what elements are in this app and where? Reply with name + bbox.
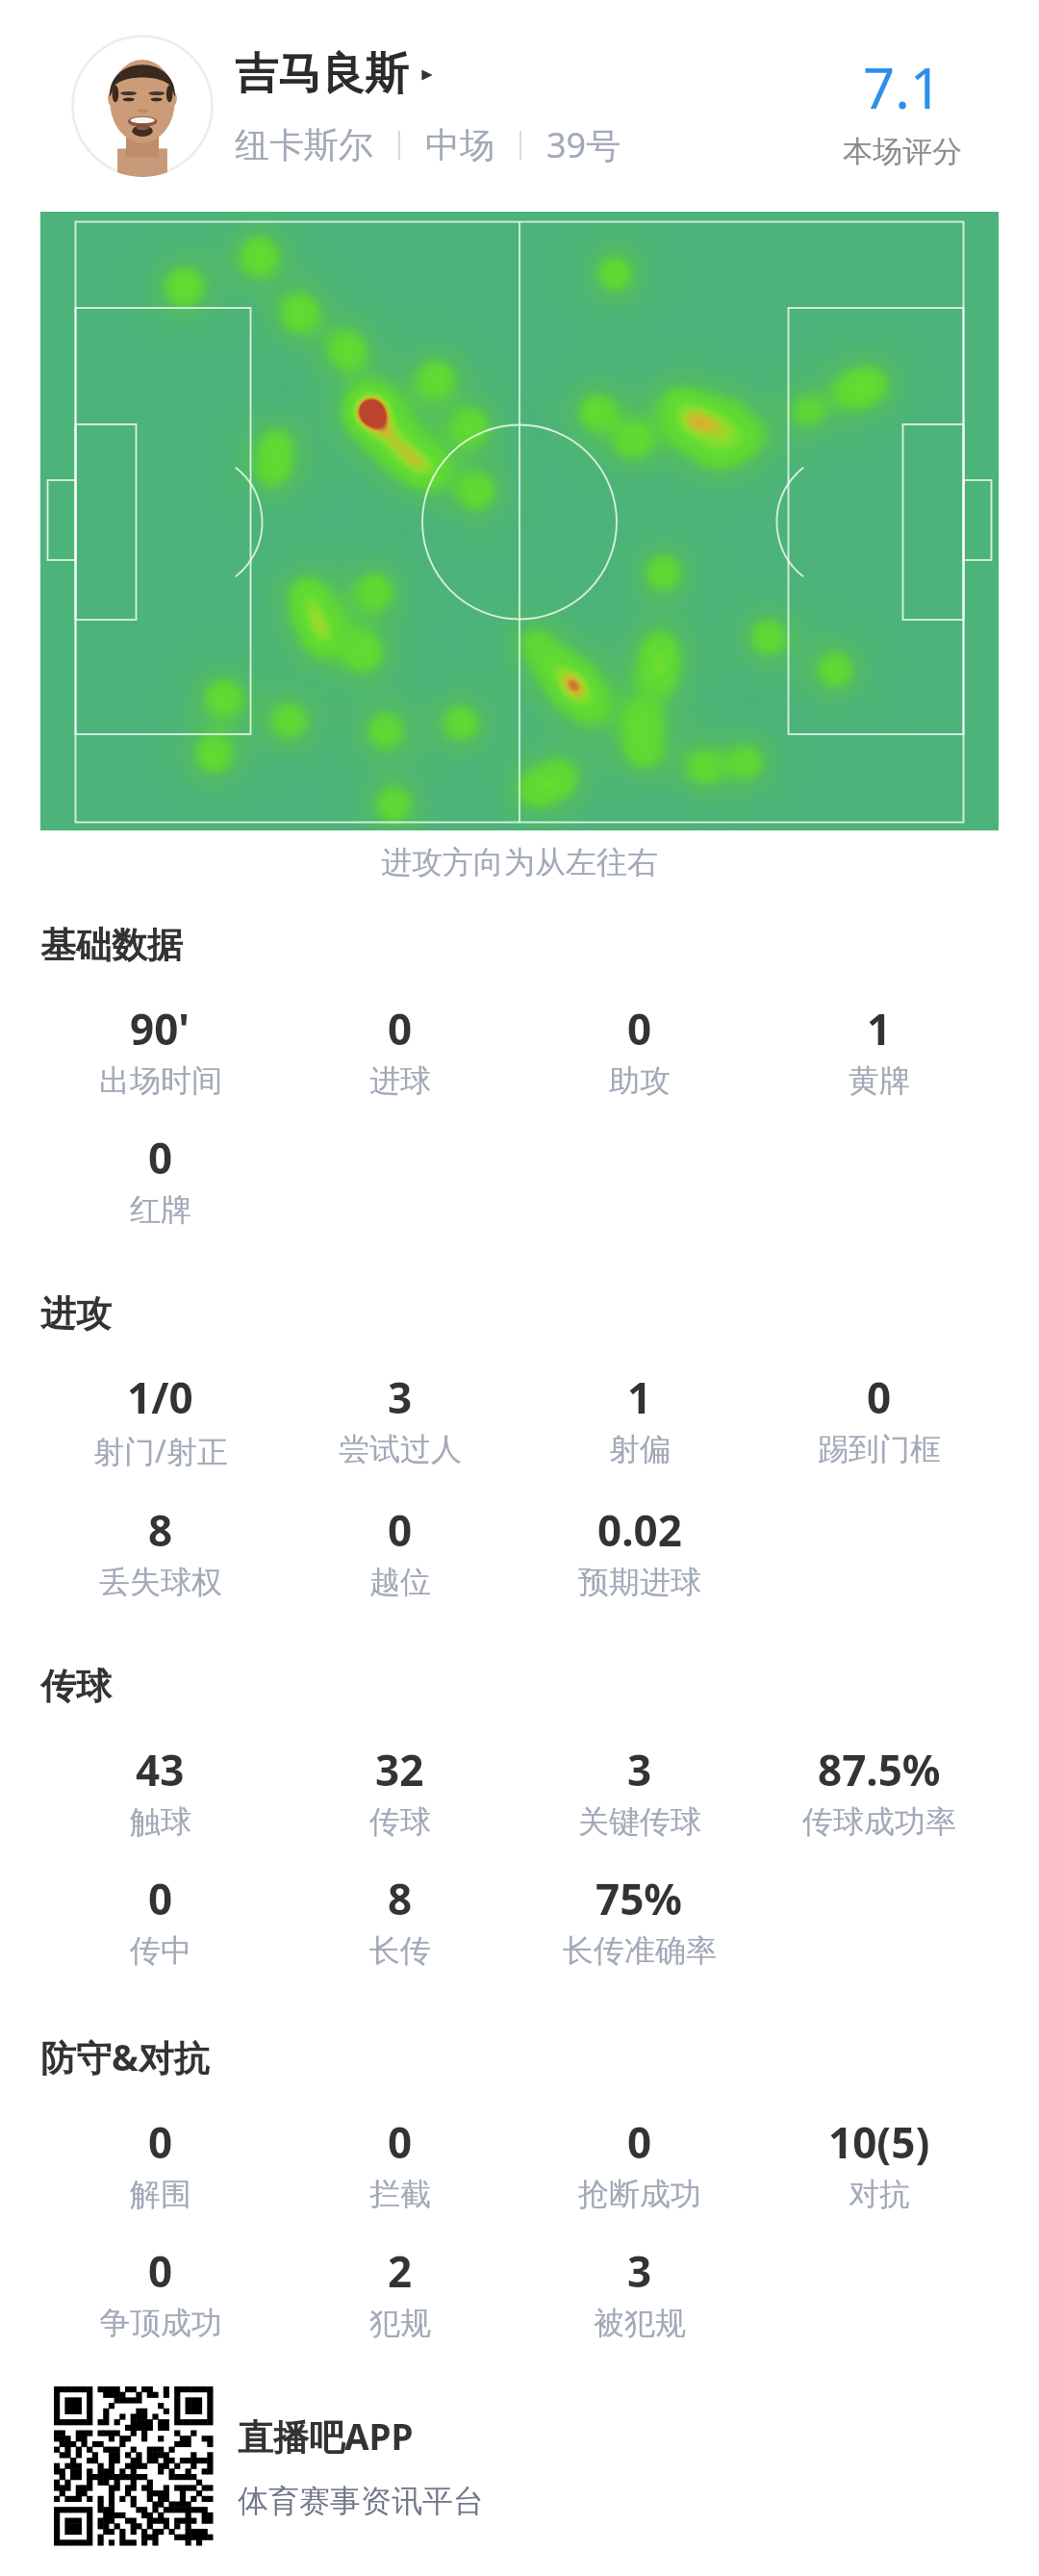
staticText: 拦截: [369, 2175, 431, 2213]
staticText: 0: [388, 1000, 413, 1058]
staticText: 3: [388, 1368, 413, 1426]
button[interactable]: 0: [519, 2113, 759, 2213]
button[interactable]: 8: [40, 1501, 280, 1601]
staticText: 防守&对抗: [40, 2032, 210, 2081]
staticText: 踢到门框: [818, 1430, 941, 1468]
button[interactable]: 3: [519, 1741, 759, 1841]
button[interactable]: 0: [40, 2242, 280, 2342]
staticText: 争顶成功: [99, 2304, 222, 2342]
staticText: 红牌: [130, 1190, 191, 1229]
button[interactable]: 0: [280, 2113, 519, 2213]
staticText: 中场: [425, 123, 494, 166]
staticText: 0: [148, 2242, 173, 2300]
staticText: 0: [148, 1129, 173, 1186]
staticText: 本场评分: [843, 133, 962, 170]
staticText: 3: [627, 1741, 652, 1798]
staticText: 75%: [596, 1870, 683, 1927]
button[interactable]: 90': [40, 1000, 280, 1100]
button[interactable]: 87.5%: [759, 1741, 999, 1841]
button[interactable]: 0: [759, 1368, 999, 1468]
staticText: 进球: [369, 1061, 431, 1100]
staticText: 预期进球: [578, 1563, 701, 1601]
staticText: 7.1: [863, 49, 942, 125]
button[interactable]: 0.02: [519, 1501, 759, 1601]
button[interactable]: 1: [519, 1368, 759, 1468]
button[interactable]: 32: [280, 1741, 519, 1841]
staticText: 长传准确率: [563, 1931, 717, 1970]
other: Open player profile: [418, 65, 437, 85]
button[interactable]: 3: [519, 2242, 759, 2342]
staticText: 传球成功率: [802, 1802, 956, 1841]
staticText: 1: [627, 1368, 652, 1426]
staticText: 0: [867, 1368, 892, 1426]
staticText: 39号: [546, 121, 621, 168]
staticText: 8: [148, 1501, 173, 1559]
button[interactable]: 0: [280, 1000, 519, 1100]
button[interactable]: 7.1: [843, 41, 962, 170]
button[interactable]: 10(5): [759, 2113, 999, 2213]
staticText: 直播吧APP: [238, 2411, 414, 2461]
staticText: 纽卡斯尔: [235, 123, 373, 166]
staticText: 助攻: [609, 1061, 671, 1100]
other: QR code: [54, 2386, 213, 2545]
staticText: 长传: [369, 1931, 431, 1970]
button[interactable]: 0: [280, 1501, 519, 1601]
button[interactable]: Player heat map: [40, 212, 999, 830]
staticText: 43: [136, 1741, 185, 1798]
staticText: 基础数据: [40, 923, 183, 968]
staticText: 0.02: [597, 1501, 682, 1559]
button[interactable]: 0: [40, 1129, 280, 1229]
button[interactable]: 吉马良斯: [235, 47, 437, 102]
staticText: 传球: [40, 1664, 112, 1709]
staticText: 射门/射正: [93, 1430, 228, 1472]
button[interactable]: 2: [280, 2242, 519, 2342]
staticText: 3: [627, 2242, 652, 2300]
staticText: 0: [148, 2113, 173, 2171]
button[interactable]: 8: [280, 1870, 519, 1970]
staticText: 抢断成功: [578, 2175, 701, 2213]
button[interactable]: 0: [519, 1000, 759, 1100]
staticText: 对抗: [849, 2175, 910, 2213]
staticText: 10(5): [828, 2113, 930, 2171]
staticText: 丢失球权: [99, 1563, 222, 1601]
staticText: 解围: [130, 2175, 191, 2213]
staticText: 尝试过人: [339, 1430, 462, 1468]
staticText: 黄牌: [849, 1061, 910, 1100]
staticText: 0: [388, 2113, 413, 2171]
button[interactable]: Player photo: [71, 35, 214, 177]
staticText: 90': [130, 1000, 190, 1058]
staticText: 0: [148, 1870, 173, 1927]
staticText: 传中: [130, 1931, 191, 1970]
staticText: 2: [388, 2242, 413, 2300]
staticText: 出场时间: [99, 1061, 222, 1100]
staticText: 1/0: [127, 1368, 193, 1426]
staticText: 进攻: [40, 1291, 112, 1337]
staticText: 32: [375, 1741, 424, 1798]
staticText: 87.5%: [818, 1741, 941, 1798]
staticText: 被犯规: [594, 2304, 686, 2342]
staticText: 越位: [369, 1563, 431, 1601]
button[interactable]: 0: [40, 2113, 280, 2213]
button[interactable]: 1: [759, 1000, 999, 1100]
button[interactable]: 43: [40, 1741, 280, 1841]
staticText: 射偏: [609, 1430, 671, 1468]
staticText: 0: [388, 1501, 413, 1559]
staticText: 吉马良斯: [235, 47, 408, 102]
staticText: 传球: [369, 1802, 431, 1841]
staticText: 体育赛事资讯平台: [238, 2482, 484, 2520]
button[interactable]: 75%: [519, 1870, 759, 1970]
staticText: 0: [627, 2113, 652, 2171]
staticText: 0: [627, 1000, 652, 1058]
button[interactable]: 1/0: [40, 1368, 280, 1472]
staticText: 关键传球: [578, 1802, 701, 1841]
button[interactable]: 3: [280, 1368, 519, 1468]
staticText: 8: [388, 1870, 413, 1927]
staticText: 进攻方向为从左往右: [0, 843, 1039, 881]
staticText: 犯规: [369, 2304, 431, 2342]
button[interactable]: QR code: [54, 2386, 1039, 2545]
staticText: 1: [867, 1000, 892, 1058]
staticText: 触球: [130, 1802, 191, 1841]
button[interactable]: 0: [40, 1870, 280, 1970]
